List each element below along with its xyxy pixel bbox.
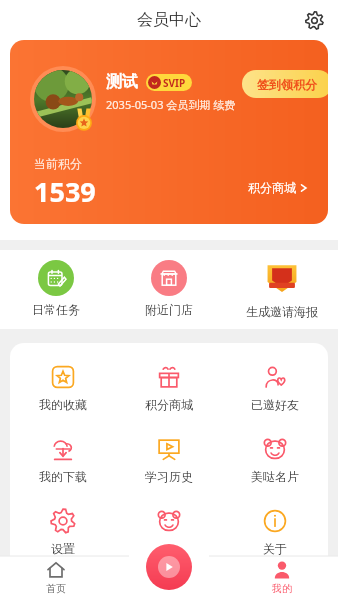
staticText: 日常任务: [32, 302, 80, 317]
button[interactable]: Play: [146, 544, 192, 590]
button[interactable]: 签到领积分: [242, 70, 328, 98]
staticText: 关于: [263, 541, 287, 556]
button[interactable]: 学习历史: [116, 429, 222, 491]
button[interactable]: Settings: [298, 4, 330, 36]
staticText: SVIP: [163, 76, 186, 90]
staticText: 美哒名片: [251, 469, 299, 484]
staticText: 已邀好友: [251, 397, 299, 412]
button[interactable]: 日常任务: [0, 256, 112, 321]
staticText: 客服: [157, 541, 181, 556]
staticText: 我的收藏: [39, 397, 87, 412]
button[interactable]: 积分商城: [248, 180, 309, 195]
button[interactable]: 我的下载: [10, 429, 116, 491]
button[interactable]: 首页: [0, 556, 112, 595]
button[interactable]: 生成邀请海报: [225, 256, 338, 323]
button[interactable]: 附近门店: [112, 256, 225, 321]
button[interactable]: 我的: [225, 556, 338, 595]
staticText: 学习历史: [145, 469, 193, 484]
button[interactable]: 测试: [10, 40, 328, 224]
button[interactable]: 设置: [10, 501, 116, 563]
staticText: 积分商城: [145, 397, 193, 412]
button[interactable]: 客服: [116, 501, 222, 563]
staticText: 测试: [106, 72, 138, 92]
staticText: 附近门店: [145, 302, 193, 317]
button[interactable]: 我的收藏: [10, 357, 116, 419]
staticText: 设置: [51, 541, 75, 556]
staticText: 我的下载: [39, 469, 87, 484]
staticText: 1539: [34, 173, 96, 210]
button[interactable]: 积分商城: [116, 357, 222, 419]
staticText: 积分商城: [248, 180, 296, 195]
staticText: 会员中心: [137, 10, 201, 30]
staticText: 首页: [46, 582, 66, 595]
button[interactable]: 关于: [222, 501, 328, 563]
staticText: 2035-05-03 会员到期 续费: [106, 97, 236, 112]
staticText: 我的: [272, 582, 292, 595]
button[interactable]: 美哒名片: [222, 429, 328, 491]
staticText: 当前积分: [34, 156, 82, 171]
staticText: 生成邀请海报: [246, 304, 318, 319]
staticText: 签到领积分: [257, 77, 317, 92]
button[interactable]: 已邀好友: [222, 357, 328, 419]
